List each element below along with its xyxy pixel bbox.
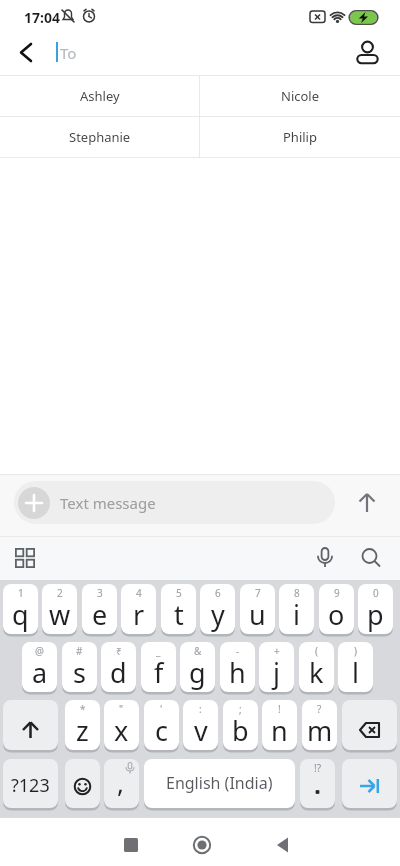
staticText: e: [92, 596, 108, 633]
staticText: r: [133, 596, 145, 633]
button[interactable]: &: [180, 642, 215, 693]
button[interactable]: ?123: [3, 759, 58, 809]
button[interactable]: [18, 487, 50, 519]
staticText: 3: [97, 586, 103, 600]
button[interactable]: *: [65, 700, 100, 751]
staticText: m: [307, 712, 333, 749]
staticText: ?: [317, 702, 322, 716]
staticText: To: [60, 43, 77, 63]
button[interactable]: [308, 541, 342, 575]
staticText: +: [274, 644, 280, 658]
staticText: c: [155, 712, 168, 749]
staticText: ?123: [11, 773, 50, 798]
button[interactable]: [65, 759, 100, 809]
staticText: 17:04: [24, 8, 60, 27]
staticText: *: [80, 702, 86, 716]
staticText: f: [154, 654, 164, 691]
staticText: 0: [373, 586, 379, 600]
staticText: Philip: [283, 128, 317, 146]
button[interactable]: [3, 700, 58, 751]
staticText: w: [49, 596, 71, 633]
staticText: s: [73, 654, 86, 691]
staticText: y: [211, 596, 225, 633]
staticText: &: [194, 644, 202, 658]
staticText: ;: [239, 702, 242, 716]
button[interactable]: Nicole: [200, 75, 400, 116]
staticText: ): [354, 644, 357, 658]
staticText: ,: [117, 765, 124, 800]
button[interactable]: ): [338, 642, 373, 693]
button[interactable]: ₹: [101, 642, 136, 693]
button[interactable]: 9: [319, 584, 354, 635]
button[interactable]: [119, 833, 143, 857]
button[interactable]: [345, 30, 390, 75]
button[interactable]: !?: [300, 759, 335, 809]
button[interactable]: ,: [104, 759, 139, 809]
staticText: Ashley: [80, 87, 120, 105]
staticText: ₹: [116, 644, 122, 658]
staticText: 8: [294, 586, 300, 600]
staticText: 7: [255, 586, 261, 600]
staticText: g: [189, 654, 206, 691]
staticText: i: [293, 596, 300, 633]
staticText: Stephanie: [69, 128, 131, 146]
staticText: v: [194, 712, 208, 749]
button[interactable]: Ashley: [0, 75, 200, 116]
button[interactable]: [0, 30, 45, 75]
staticText: 2: [57, 586, 63, 600]
button[interactable]: [190, 833, 214, 857]
staticText: j: [273, 654, 280, 691]
button[interactable]: 5: [161, 584, 196, 635]
staticText: l: [352, 654, 359, 691]
staticText: o: [328, 596, 345, 633]
staticText: 6: [215, 586, 221, 600]
button[interactable]: Stephanie: [0, 116, 200, 158]
button[interactable]: _: [141, 642, 176, 693]
staticText: k: [309, 654, 324, 691]
button[interactable]: ;: [223, 700, 258, 751]
button[interactable]: -: [220, 642, 255, 693]
button[interactable]: 2: [42, 584, 77, 635]
button[interactable]: 6: [200, 584, 235, 635]
button[interactable]: (: [299, 642, 334, 693]
staticText: z: [76, 712, 89, 749]
button[interactable]: 4: [121, 584, 156, 635]
button[interactable]: [354, 541, 388, 575]
button[interactable]: #: [62, 642, 97, 693]
button[interactable]: @: [22, 642, 57, 693]
staticText: _: [156, 644, 161, 658]
button[interactable]: ': [144, 700, 179, 751]
button[interactable]: To: [56, 30, 176, 75]
button[interactable]: English (India): [144, 759, 295, 809]
staticText: d: [110, 654, 127, 691]
button[interactable]: 7: [240, 584, 275, 635]
button[interactable]: Philip: [200, 116, 400, 158]
staticText: !: [278, 702, 281, 716]
button[interactable]: [342, 700, 397, 751]
button[interactable]: 8: [279, 584, 314, 635]
staticText: q: [12, 596, 29, 633]
staticText: !?: [314, 761, 322, 775]
button[interactable]: +: [259, 642, 294, 693]
staticText: n: [271, 712, 288, 749]
button[interactable]: [8, 541, 42, 575]
staticText: (: [315, 644, 318, 658]
staticText: Nicole: [281, 87, 320, 105]
button[interactable]: 1: [3, 584, 38, 635]
staticText: t: [174, 596, 184, 633]
button[interactable]: Text message: [14, 481, 335, 524]
staticText: 1: [18, 586, 24, 600]
staticText: #: [76, 644, 83, 658]
staticText: 5: [176, 586, 182, 600]
button[interactable]: 0: [358, 584, 393, 635]
button[interactable]: :: [183, 700, 218, 751]
button[interactable]: [268, 833, 292, 857]
button[interactable]: !: [262, 700, 297, 751]
button[interactable]: 3: [82, 584, 117, 635]
button[interactable]: ?: [302, 700, 337, 751]
button[interactable]: [347, 483, 387, 523]
staticText: English (India): [166, 772, 273, 794]
button[interactable]: ": [104, 700, 139, 751]
staticText: Text message: [60, 493, 156, 513]
button[interactable]: [342, 759, 397, 809]
